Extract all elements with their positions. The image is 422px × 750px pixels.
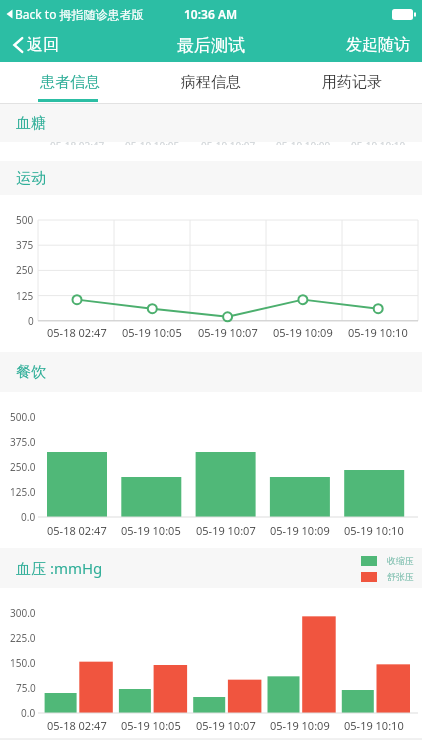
staticText: 发起随访 [346,35,410,55]
staticText: 05-19 10:05 [121,523,181,537]
staticText: 05-19 10:10 [344,523,404,537]
staticText: 05-19 10:10 [348,325,408,339]
button[interactable]: 发起随访 [346,35,410,55]
staticText: 05-19 10:07 [196,718,256,732]
staticText: 舒张压 [387,571,414,582]
staticText: 05-19 10:09 [276,142,331,145]
staticText: 05-18 02:47 [47,718,107,732]
staticText: 500 [16,213,34,227]
staticText: 05-19 10:09 [270,523,330,537]
staticText: 最后测试 [177,35,245,56]
staticText: 250.0 [10,460,36,474]
staticText: 0.0 [21,706,36,720]
staticText: 05-19 10:10 [344,718,404,732]
staticText: 用药记录 [322,73,382,92]
staticText: 05-18 02:47 [47,325,107,339]
staticText: 05-19 10:05 [122,325,182,339]
staticText: 10:36 AM [184,6,238,22]
staticText: 患者信息 [40,73,100,92]
staticText: 血糖 [16,114,46,133]
staticText: 05-19 10:07 [196,523,256,537]
staticText: 150.0 [10,656,36,670]
staticText: 病程信息 [181,73,241,92]
staticText: 05-18 02:47 [50,142,105,145]
staticText: 75.0 [16,681,36,695]
staticText: 餐饮 [16,363,46,382]
staticText: Back to 拇指随诊患者版 [15,6,144,22]
staticText: 05-19 10:07 [198,325,258,339]
staticText: 225.0 [10,631,36,645]
staticText: 125 [16,289,34,303]
staticText: 05-19 10:10 [351,142,406,145]
staticText: 05-19 10:07 [201,142,256,145]
staticText: 运动 [16,169,46,188]
staticText: 05-19 10:05 [121,718,181,732]
staticText: 05-19 10:09 [273,325,333,339]
button[interactable]: 返回 [12,28,59,62]
staticText: 500.0 [10,410,36,424]
staticText: 05-19 10:09 [270,718,330,732]
staticText: 收缩压 [387,555,414,566]
staticText: 125.0 [10,485,36,499]
button[interactable]: 患者信息 [0,62,140,103]
staticText: 0.0 [21,510,36,524]
staticText: 250 [16,263,34,277]
staticText: 375 [16,238,34,252]
staticText: 0 [28,314,34,328]
staticText: 05-19 10:05 [125,142,180,145]
button[interactable]: 用药记录 [281,62,422,103]
staticText: 05-18 02:47 [47,523,107,537]
staticText: 375.0 [10,435,36,449]
staticText: 返回 [27,35,59,55]
staticText: 血压 :mmHg [16,558,103,578]
button[interactable]: 病程信息 [140,62,281,103]
staticText: 300.0 [10,606,36,620]
